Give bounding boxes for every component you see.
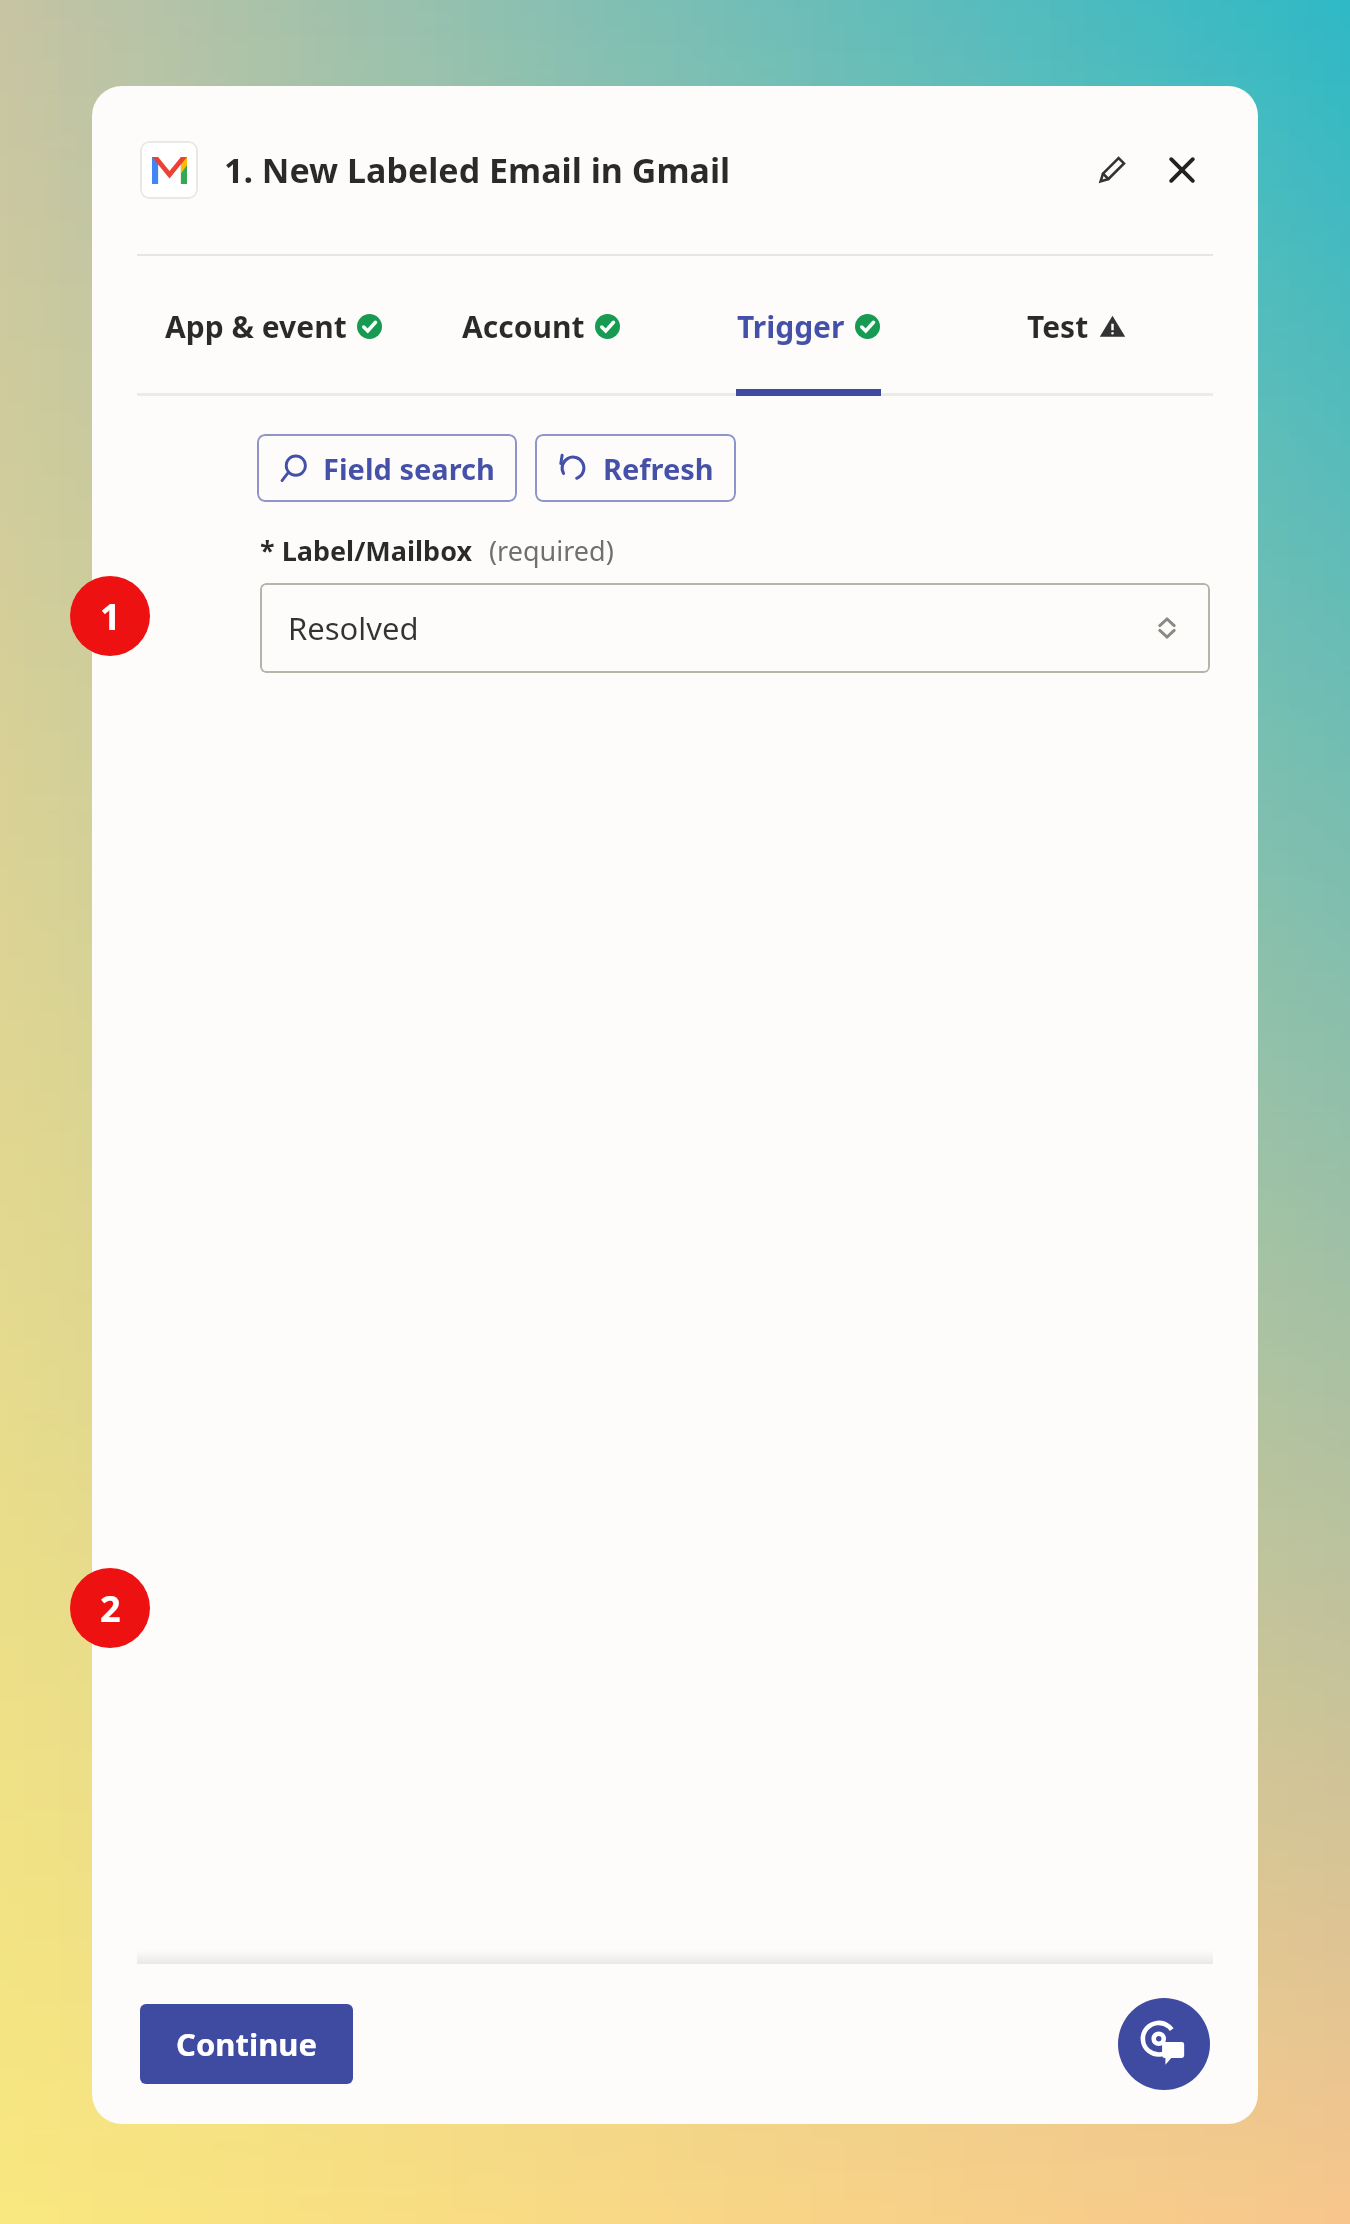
button[interactable]: Continue (140, 2004, 353, 2084)
button[interactable]: Resolved (260, 583, 1210, 673)
button[interactable]: App & event (140, 256, 407, 396)
staticText: 1 (100, 592, 121, 641)
button[interactable]: Edit (1084, 142, 1140, 198)
staticText: 2 (100, 1584, 121, 1633)
staticText: Refresh (603, 449, 714, 488)
staticText: Field search (323, 449, 495, 488)
staticText: Continue (176, 2023, 317, 2065)
staticText: App & event (165, 306, 347, 347)
staticText: Test (1027, 306, 1089, 347)
staticText: 1. New Labeled Email in Gmail (224, 147, 731, 193)
staticText: Trigger (737, 306, 845, 347)
button[interactable]: Field search (257, 434, 517, 502)
staticText: * Label/Mailbox (260, 532, 473, 569)
staticText: Resolved (288, 607, 419, 649)
button[interactable]: Trigger (674, 256, 942, 396)
staticText: Account (462, 306, 585, 347)
staticText: (required) (489, 532, 614, 569)
button[interactable]: Test (942, 256, 1210, 396)
button[interactable]: Refresh (535, 434, 736, 502)
button[interactable]: Close (1154, 142, 1210, 198)
button[interactable]: Account (407, 256, 674, 396)
button[interactable]: Support (1118, 1998, 1210, 2090)
